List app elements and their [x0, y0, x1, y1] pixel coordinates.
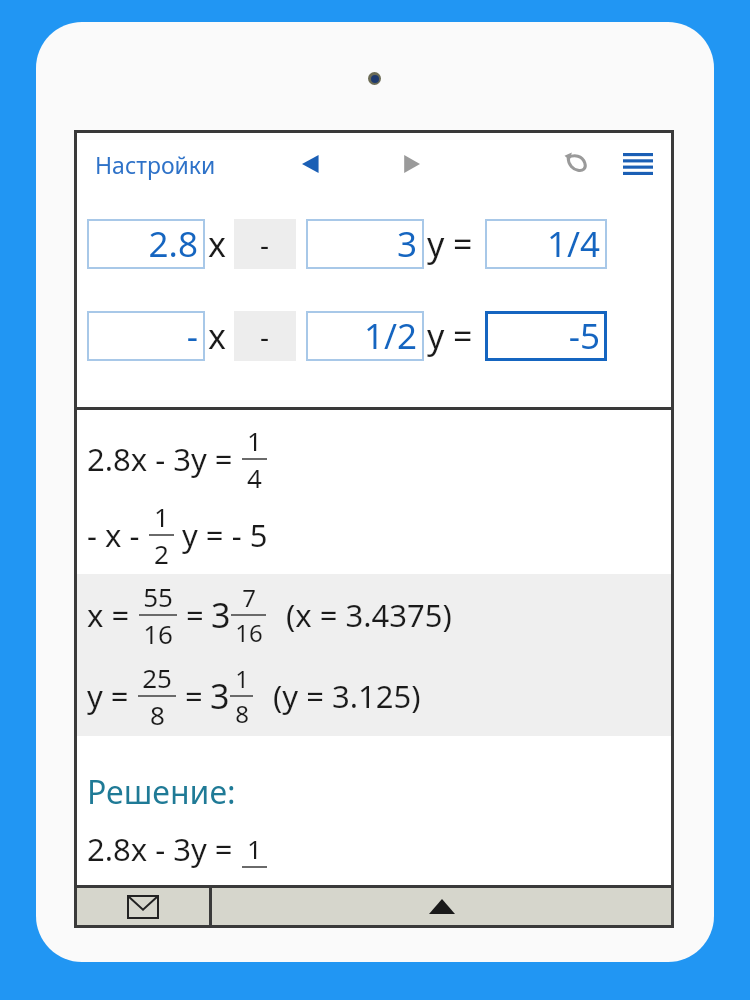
staticText: 1/4	[546, 220, 600, 268]
staticText: x	[208, 221, 226, 267]
staticText: 4	[247, 460, 262, 495]
staticText: 25	[142, 660, 172, 695]
staticText: 2.8	[148, 220, 198, 268]
button[interactable]: -	[87, 311, 205, 361]
staticText: 2.8x - 3y =	[87, 438, 233, 480]
staticText: 1	[247, 423, 262, 458]
staticText: (x = 3.4375)	[286, 594, 452, 636]
staticText: 16	[143, 616, 173, 651]
staticText: 2	[154, 536, 169, 571]
button[interactable]: Menu	[615, 141, 661, 187]
button[interactable]: Send by email	[77, 888, 209, 925]
staticText: -	[260, 317, 270, 355]
staticText: Настройки	[95, 149, 216, 180]
staticText: y	[427, 313, 445, 359]
button[interactable]: Scroll up	[212, 888, 671, 925]
button[interactable]: -	[234, 311, 296, 361]
staticText: =	[185, 675, 203, 717]
staticText: 1/2	[363, 312, 417, 360]
button[interactable]: Настройки	[91, 145, 220, 184]
button[interactable]: 3	[306, 219, 424, 269]
staticText: 1	[235, 662, 249, 695]
staticText: y	[427, 221, 445, 267]
button[interactable]: Undo	[555, 141, 599, 185]
staticText: -5	[568, 312, 600, 360]
staticText: 8	[235, 697, 249, 730]
button[interactable]: Next	[392, 145, 430, 183]
staticText: 3	[396, 220, 417, 268]
staticText: 1	[154, 499, 169, 534]
staticText: x	[208, 313, 226, 359]
staticText: =	[453, 221, 473, 267]
staticText: 1	[247, 831, 262, 866]
button[interactable]: Previous	[292, 145, 330, 183]
button[interactable]: 2.8	[87, 219, 205, 269]
button[interactable]: -	[234, 219, 296, 269]
button[interactable]: -5	[485, 311, 607, 361]
staticText: 8	[150, 697, 165, 732]
button[interactable]: 1/2	[306, 311, 424, 361]
staticText: Решение:	[87, 770, 236, 814]
staticText: 55	[143, 579, 173, 614]
staticText: -	[260, 225, 270, 263]
staticText: 16	[235, 616, 263, 649]
staticText: 3	[211, 592, 231, 638]
staticText: =	[186, 594, 204, 636]
staticText: - x -	[87, 514, 140, 556]
staticText: 7	[242, 581, 256, 614]
staticText: 3	[210, 673, 230, 719]
staticText: 2.8x - 3y =	[87, 828, 233, 870]
staticText: x =	[87, 594, 130, 636]
staticText: y =	[87, 675, 129, 717]
staticText: (y = 3.125)	[273, 675, 421, 717]
staticText: =	[453, 313, 473, 359]
staticText: -	[186, 312, 198, 360]
staticText: y = - 5	[182, 514, 268, 556]
button[interactable]: 1/4	[485, 219, 607, 269]
